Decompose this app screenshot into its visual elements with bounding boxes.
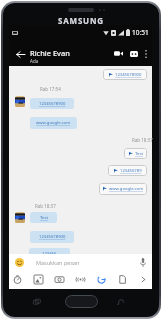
- button[interactable]: www.google.com: [30, 117, 77, 129]
- button[interactable]: Google search: [94, 272, 109, 286]
- staticText: Ada: [30, 58, 39, 64]
- button[interactable]: Gallery: [31, 272, 46, 286]
- staticText: Rab 18:37: [132, 137, 153, 143]
- button[interactable]: Test: [124, 148, 147, 159]
- button[interactable]: 123456: [29, 248, 70, 259]
- button[interactable]: Contact photo: [15, 212, 25, 223]
- button[interactable]: Emoji: [14, 257, 24, 267]
- button[interactable]: More options: [141, 46, 151, 61]
- button[interactable]: Richie Evan: [30, 48, 70, 64]
- staticText: www.google.com: [36, 120, 71, 126]
- staticText: Test: [135, 151, 143, 157]
- button[interactable]: www.google.com: [99, 183, 147, 195]
- staticText: Rab 17:54: [40, 86, 61, 92]
- button[interactable]: Stickers: [10, 272, 25, 286]
- staticText: Masukkan pesan: [36, 259, 80, 266]
- button[interactable]: 123456789: [108, 165, 147, 176]
- staticText: 12345678900: [39, 101, 66, 107]
- button[interactable]: Home: [65, 295, 98, 308]
- button[interactable]: More: [136, 272, 151, 286]
- staticText: 123456: [42, 251, 57, 257]
- button[interactable]: 12345678900: [103, 69, 147, 80]
- staticText: Richie Evan: [30, 48, 70, 58]
- button[interactable]: Back: [117, 298, 125, 306]
- staticText: 12345678900: [39, 234, 66, 240]
- button[interactable]: Camera: [52, 272, 67, 286]
- button[interactable]: Voice input: [138, 257, 148, 267]
- button[interactable]: Back: [13, 47, 28, 62]
- button[interactable]: Video call: [111, 46, 126, 61]
- button[interactable]: 12345678900: [30, 98, 74, 109]
- staticText: Rab 18:37: [35, 203, 56, 209]
- staticText: 123456789: [120, 168, 142, 174]
- button[interactable]: Voice: [73, 272, 88, 286]
- staticText: 10:51: [132, 28, 149, 37]
- staticText: SAMSUNG: [58, 15, 104, 26]
- button[interactable]: Messages: [126, 46, 141, 61]
- button[interactable]: 12345678900: [30, 231, 74, 243]
- button[interactable]: Clipboard: [115, 272, 130, 286]
- staticText: 12345678900: [115, 72, 142, 78]
- button[interactable]: Contact photo: [15, 96, 25, 107]
- staticText: www.google.com: [109, 186, 144, 192]
- staticText: Test: [40, 215, 48, 221]
- button[interactable]: Test: [30, 212, 57, 223]
- button[interactable]: Recents: [33, 298, 41, 306]
